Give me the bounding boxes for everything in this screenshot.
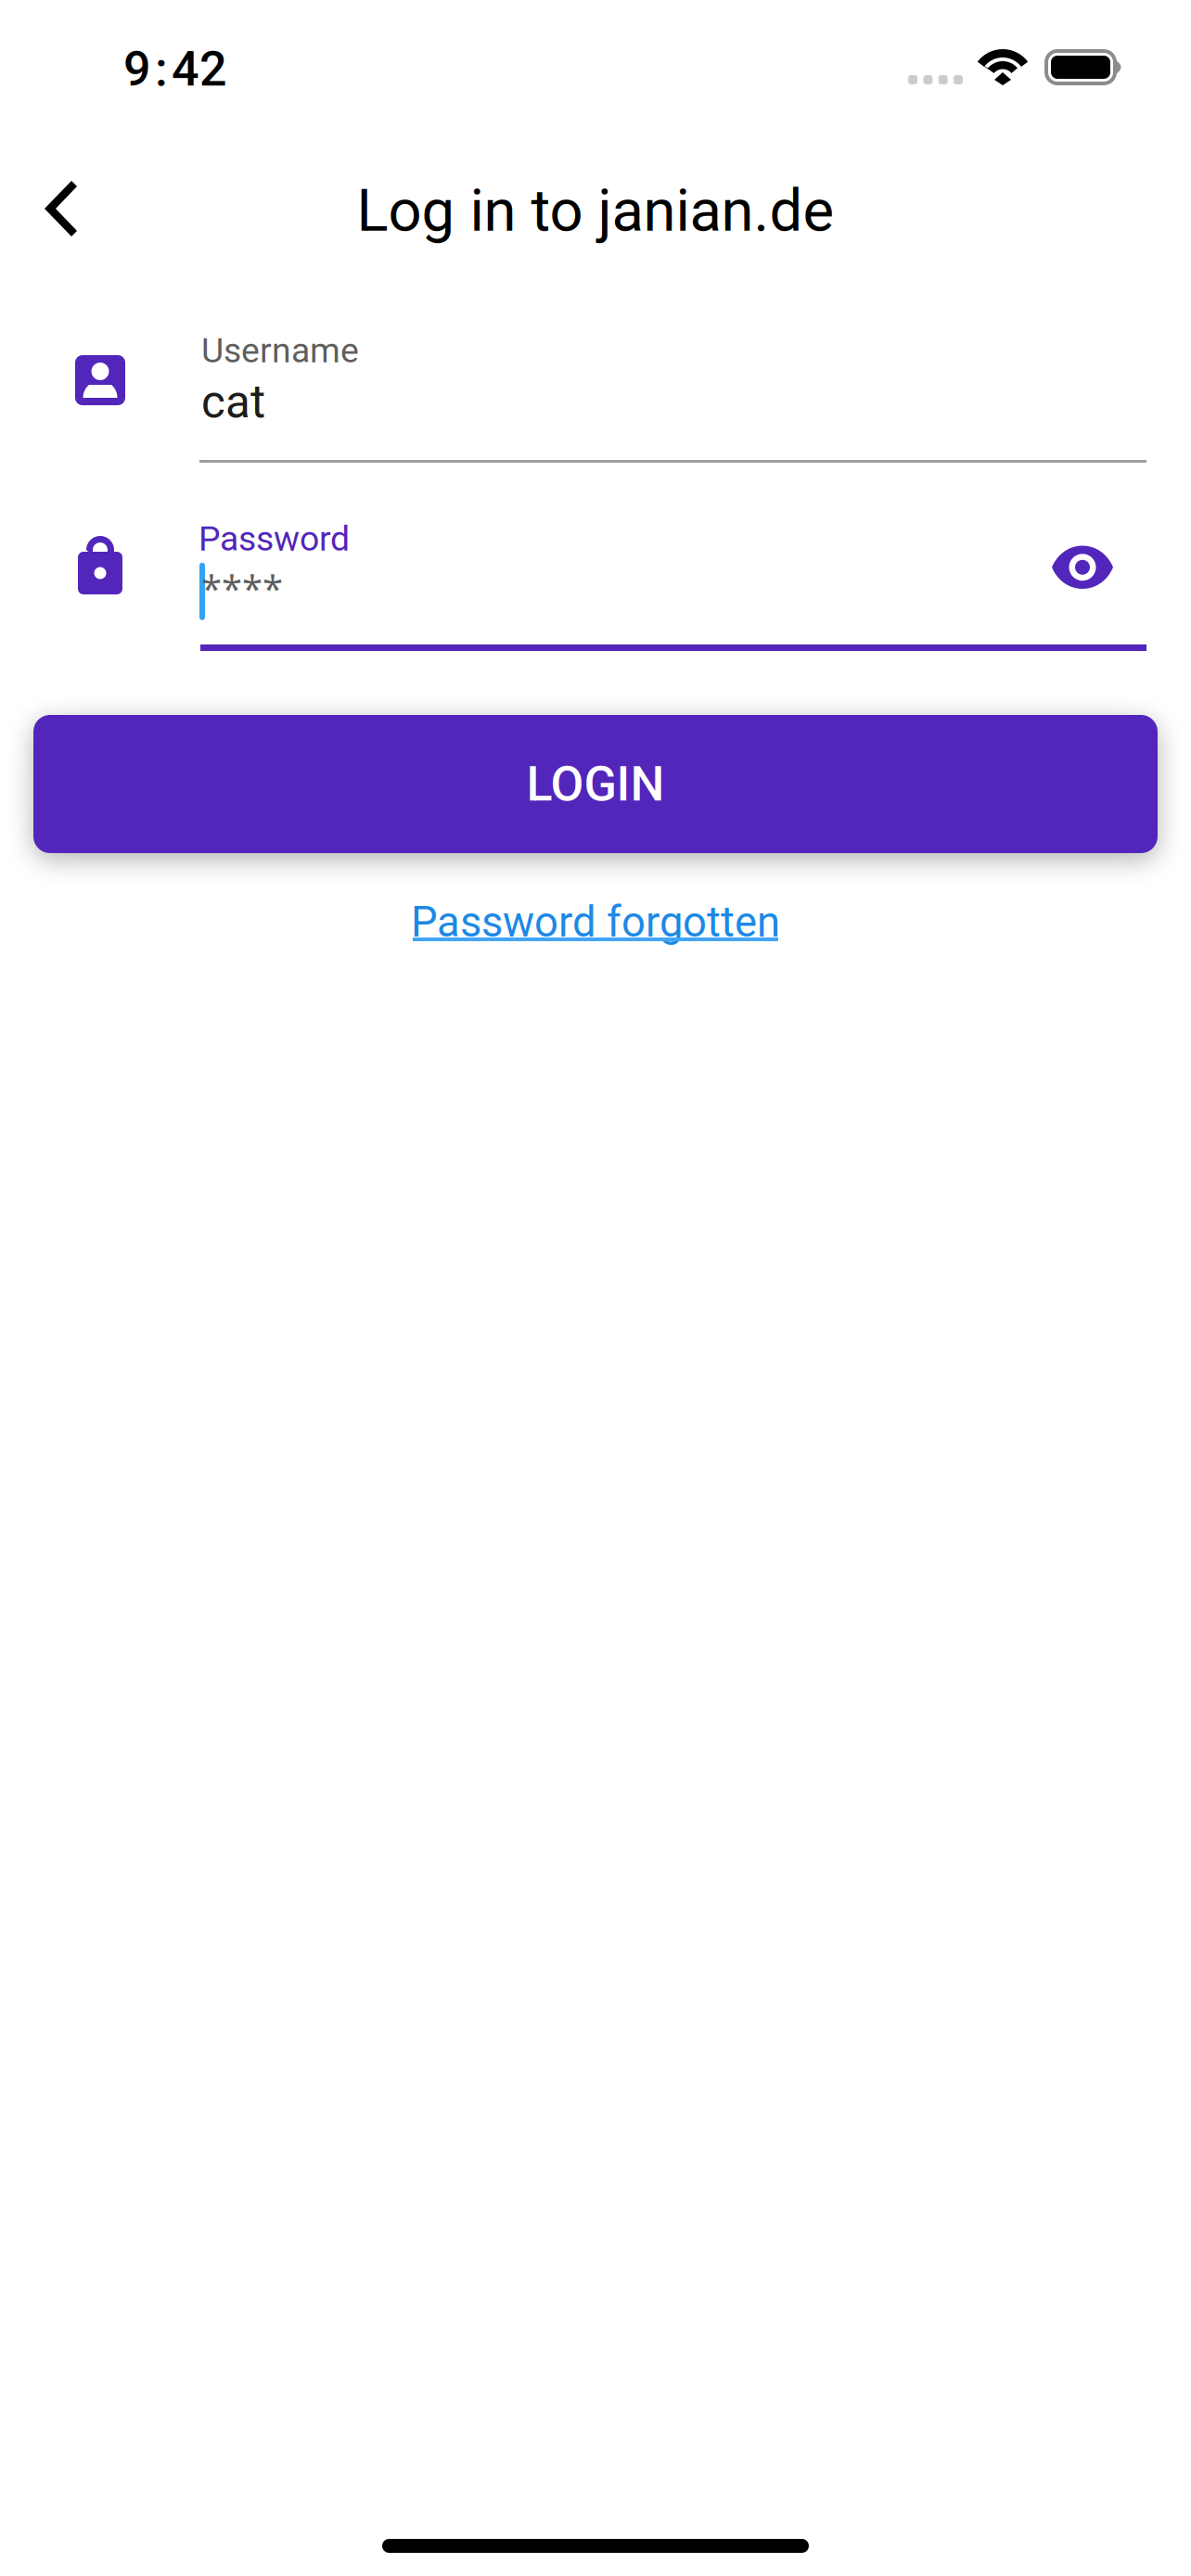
- staticText: Password forgotten: [411, 898, 780, 947]
- button[interactable]: Show password: [1052, 546, 1146, 629]
- staticText: Log in to janian.de: [357, 176, 834, 245]
- staticText: cat: [201, 375, 265, 429]
- staticText: Password: [198, 518, 350, 559]
- button[interactable]: Password forgotten: [411, 853, 780, 941]
- staticText: LOGIN: [526, 756, 665, 812]
- staticText: 9: [123, 41, 151, 97]
- staticText: :: [155, 41, 168, 97]
- staticText: 42: [172, 41, 227, 97]
- staticText: Username: [201, 330, 359, 371]
- button[interactable]: Username: [0, 288, 1191, 477]
- staticText: ****: [201, 562, 283, 613]
- button[interactable]: LOGIN: [33, 715, 1158, 853]
- button[interactable]: Back: [0, 130, 89, 260]
